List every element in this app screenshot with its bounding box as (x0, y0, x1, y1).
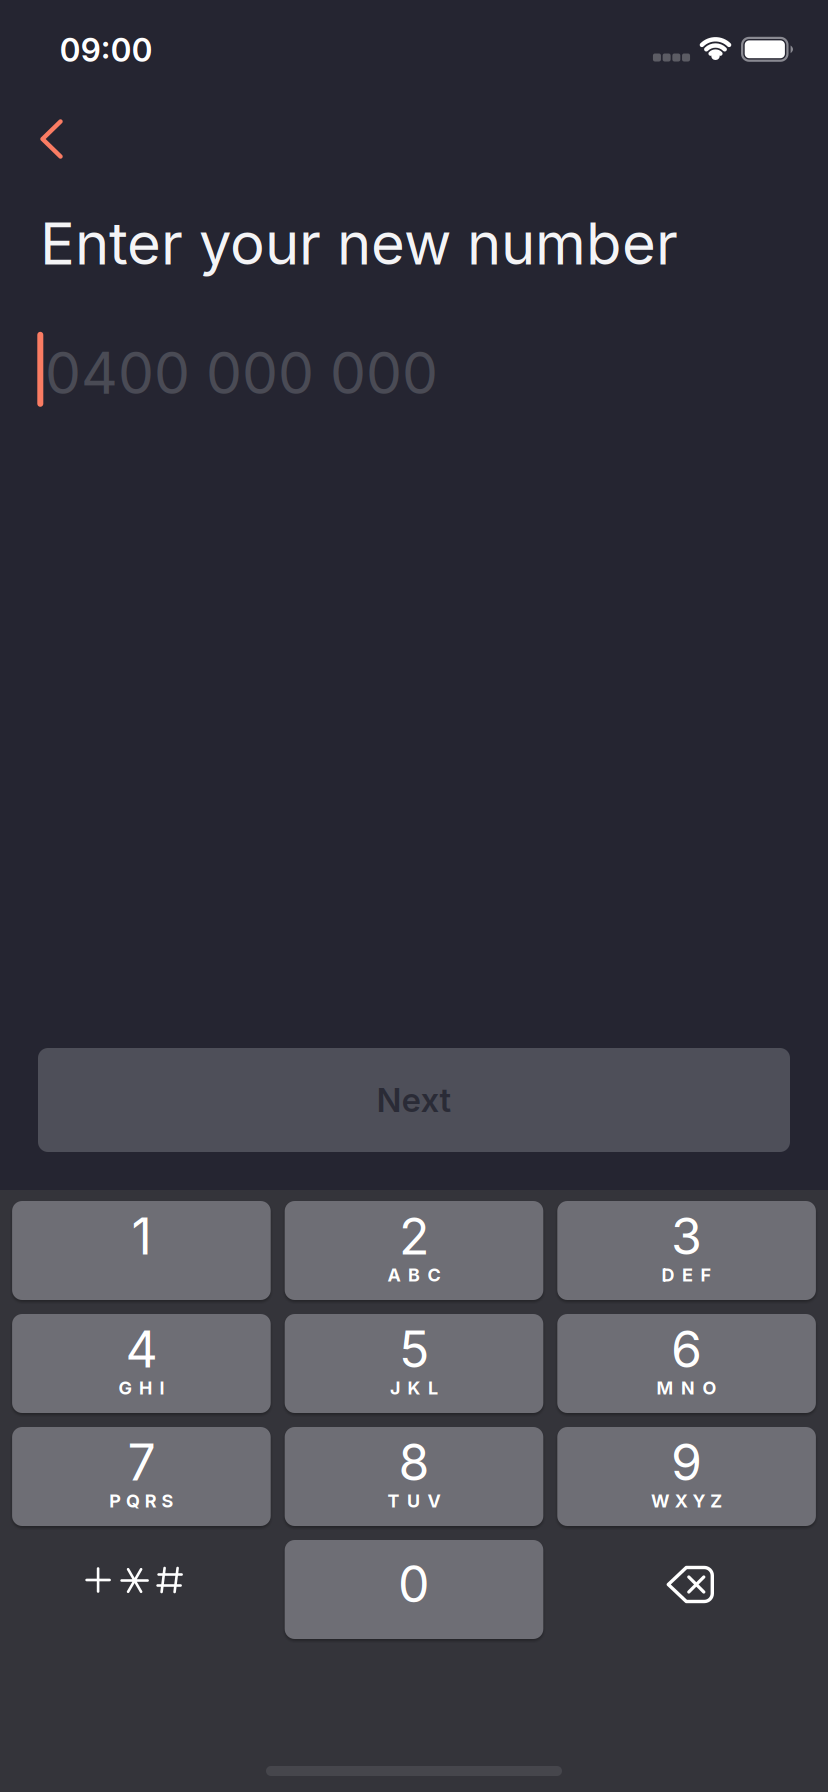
staticText: 09:00 (59, 31, 152, 69)
staticText: H (139, 1377, 152, 1399)
staticText: 8 (398, 1433, 429, 1492)
staticText: M (657, 1377, 674, 1399)
staticText: Q (126, 1490, 140, 1512)
staticText: 2 (399, 1207, 429, 1266)
staticText: I (159, 1377, 164, 1399)
button[interactable]: 5 (285, 1314, 543, 1413)
button[interactable]: 1 (12, 1201, 271, 1300)
staticText: K (407, 1377, 420, 1399)
staticText: N (681, 1377, 695, 1399)
staticText: E (682, 1264, 693, 1286)
staticText: 0 (398, 1554, 430, 1613)
staticText: Enter your new number (40, 209, 678, 278)
button[interactable]: 7 (12, 1427, 271, 1526)
staticText: G (118, 1377, 131, 1399)
button[interactable]: Delete (557, 1540, 816, 1639)
button[interactable]: 8 (285, 1427, 543, 1526)
button[interactable]: More symbols (12, 1540, 271, 1639)
staticText: U (407, 1490, 420, 1512)
staticText: T (387, 1490, 399, 1512)
staticText: P (109, 1490, 121, 1512)
button[interactable]: 2 (285, 1201, 543, 1300)
staticText: 5 (399, 1320, 429, 1379)
staticText: 0400 000 000 (45, 339, 438, 407)
staticText: A (387, 1264, 400, 1286)
staticText: 6 (671, 1320, 702, 1379)
button[interactable]: Next (38, 1048, 790, 1152)
staticText: X (675, 1490, 688, 1512)
staticText: Y (692, 1490, 705, 1512)
staticText: V (427, 1490, 440, 1512)
staticText: 3 (671, 1207, 702, 1266)
button[interactable]: 4 (12, 1314, 271, 1413)
button[interactable]: Back (21, 104, 81, 174)
staticText: J (390, 1377, 400, 1399)
button[interactable]: 0 (285, 1540, 543, 1639)
staticText: 4 (125, 1320, 157, 1379)
staticText: S (162, 1490, 174, 1512)
staticText: L (428, 1377, 438, 1399)
staticText: B (408, 1264, 420, 1286)
button[interactable]: 9 (557, 1427, 816, 1526)
staticText: C (427, 1264, 440, 1286)
staticText: D (662, 1264, 675, 1286)
staticText: 7 (127, 1433, 155, 1492)
button[interactable]: 3 (557, 1201, 816, 1300)
staticText: Z (710, 1490, 722, 1512)
staticText: 1 (131, 1207, 151, 1266)
staticText: F (701, 1264, 712, 1286)
staticText: O (703, 1377, 717, 1399)
staticText: W (651, 1490, 670, 1512)
staticText: 9 (671, 1433, 702, 1492)
button[interactable]: 6 (557, 1314, 816, 1413)
staticText: R (145, 1490, 157, 1512)
staticText: Next (376, 1080, 451, 1119)
